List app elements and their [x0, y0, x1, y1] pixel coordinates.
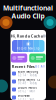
staticText: 08:02 · Mon: [17, 89, 35, 93]
button[interactable]: [11, 53, 27, 62]
staticText: Voice Memo 12: [17, 78, 40, 81]
button[interactable]: [29, 53, 46, 62]
staticText: 02:14 · Today: [17, 73, 36, 77]
staticText: Recent Files: [12, 64, 35, 69]
button[interactable]: Team Meeting: [12, 69, 44, 77]
staticText: Hi, Ronda Cacha: [11, 33, 43, 39]
staticText: 12:31 · Sun: [17, 97, 34, 100]
staticText: 00:48 · Today: [17, 81, 36, 85]
staticText: See All: [35, 65, 45, 68]
button[interactable]: Profile: [43, 34, 46, 37]
staticText: Audio Clip: [11, 12, 44, 20]
staticText: Record New Clip: [17, 47, 40, 50]
button[interactable]: Voice Memo 12: [12, 77, 44, 85]
staticText: Multifunctional: [3, 4, 53, 12]
button[interactable]: Interview: [12, 93, 44, 100]
button[interactable]: See All: [35, 65, 45, 68]
staticText: Team Meeting: [17, 70, 38, 73]
staticText: Interview: [17, 94, 29, 97]
button[interactable]: Lecture Notes: [12, 85, 44, 93]
button[interactable]: Record New Clip: [12, 40, 44, 52]
staticText: Lecture Notes: [17, 86, 36, 89]
